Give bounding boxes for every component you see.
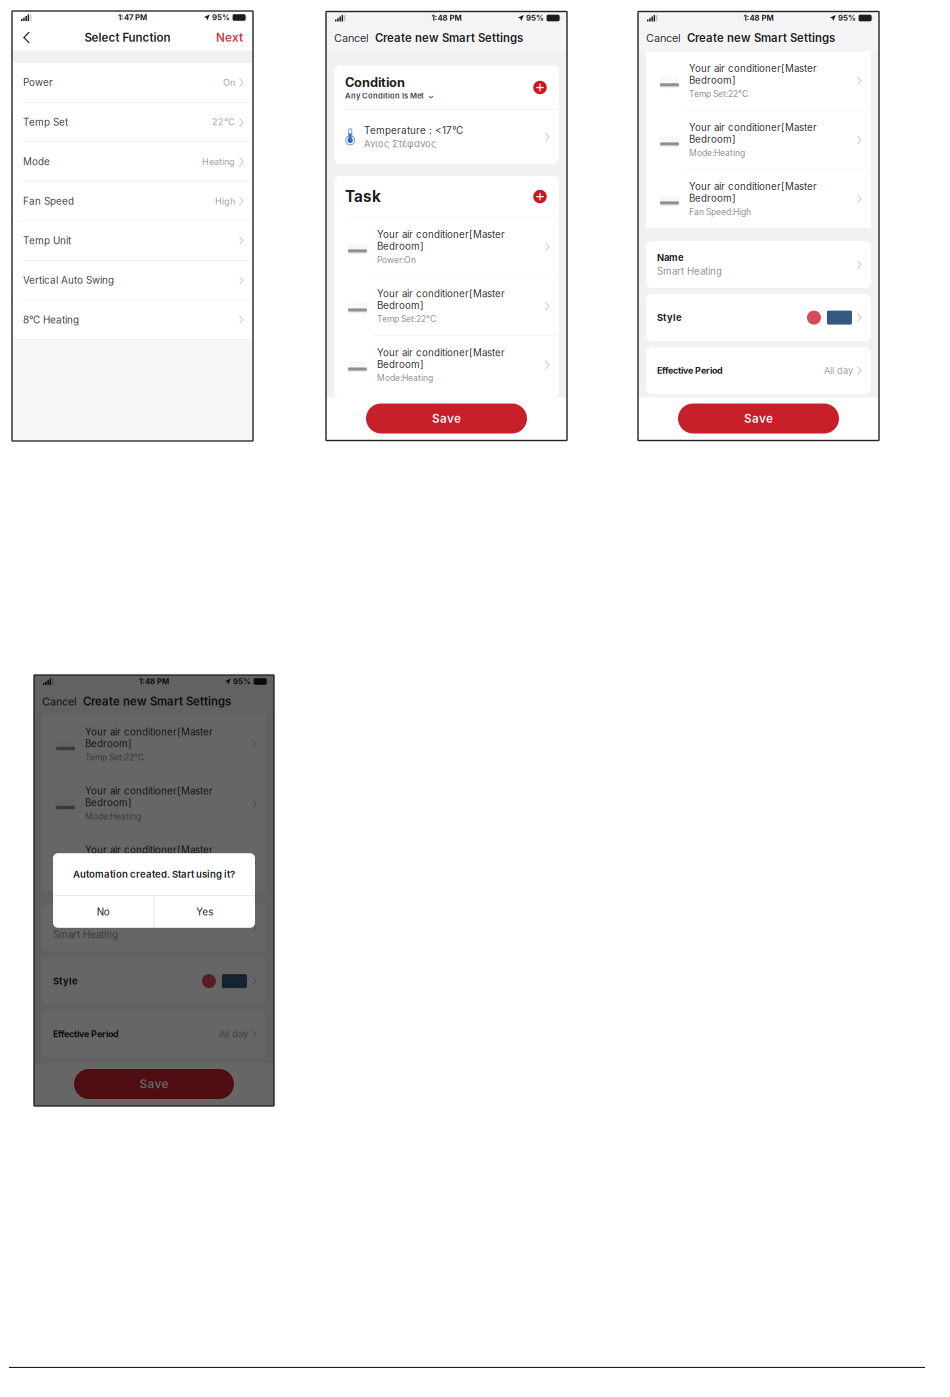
- button[interactable]: Add: [530, 77, 550, 97]
- staticText: Save: [139, 1077, 168, 1091]
- button[interactable]: Your air conditioner[Master: [334, 277, 559, 335]
- staticText: Vertical Auto Swing: [23, 274, 114, 286]
- staticText: Your air conditioner[Master: [85, 844, 213, 856]
- button[interactable]: Your air conditioner[Master: [334, 336, 559, 394]
- staticText: Your air conditioner[Master: [377, 347, 505, 359]
- staticText: Your air conditioner[Master: [377, 229, 505, 240]
- button[interactable]: Temperature : <17°C: [334, 110, 559, 164]
- staticText: 95%: [524, 13, 544, 23]
- button[interactable]: Your air conditioner[Master: [646, 51, 871, 110]
- button[interactable]: Vertical Auto Swing: [12, 261, 253, 300]
- button[interactable]: Your air conditioner[Master: [42, 774, 266, 832]
- staticText: Cancel: [42, 695, 77, 708]
- button[interactable]: Cancel: [34, 688, 83, 715]
- staticText: Bedroom]: [377, 240, 424, 252]
- button[interactable]: Effective Period: [42, 1011, 266, 1058]
- staticText: Create new Smart Settings: [687, 31, 835, 45]
- staticText: Next: [216, 30, 243, 45]
- staticText: 22°C: [212, 117, 235, 128]
- staticText: Create new Smart Settings: [83, 695, 231, 708]
- staticText: Cancel: [334, 31, 369, 45]
- button[interactable]: Your air conditioner[Master: [42, 833, 266, 892]
- staticText: 1:47 PM: [118, 13, 147, 22]
- staticText: Bedroom]: [689, 74, 736, 86]
- button[interactable]: Next: [216, 24, 253, 51]
- staticText: Name: [53, 916, 80, 927]
- staticText: Bedroom]: [377, 358, 424, 370]
- button[interactable]: Your air conditioner[Master: [646, 110, 871, 169]
- button[interactable]: Save: [366, 403, 527, 433]
- staticText: Bedroom]: [689, 133, 736, 145]
- staticText: Your air conditioner[Master: [377, 288, 505, 299]
- staticText: No: [97, 906, 110, 918]
- staticText: Mode:Heating: [689, 148, 745, 158]
- staticText: Effective Period: [657, 365, 723, 376]
- staticText: Automation created. Start using it?: [73, 868, 235, 880]
- staticText: 1:48 PM: [139, 677, 169, 686]
- staticText: Fan Speed:High: [85, 870, 147, 880]
- staticText: Bedroom]: [377, 299, 424, 311]
- staticText: All day: [824, 365, 853, 376]
- button[interactable]: 8°C Heating: [12, 300, 253, 339]
- staticText: High: [215, 196, 235, 207]
- staticText: Yes: [196, 906, 213, 918]
- staticText: Temp Unit: [23, 235, 71, 247]
- staticText: Name: [657, 252, 684, 263]
- staticText: Mode:Heating: [377, 373, 433, 383]
- staticText: Save: [432, 411, 461, 426]
- staticText: Smart Heating: [657, 265, 722, 277]
- button[interactable]: Style: [42, 958, 266, 1005]
- staticText: Any Condition Is Met ⌄: [345, 91, 434, 100]
- staticText: Your air conditioner[Master: [85, 785, 213, 797]
- staticText: Style: [657, 312, 682, 323]
- staticText: Effective Period: [53, 1029, 119, 1039]
- staticText: Temp Set:22°C: [689, 89, 748, 99]
- staticText: 8°C Heating: [23, 314, 79, 326]
- staticText: Power: [23, 76, 53, 88]
- staticText: 95%: [231, 677, 251, 686]
- button[interactable]: Temp Set: [12, 102, 253, 141]
- button[interactable]: Your air conditioner[Master: [42, 715, 266, 773]
- staticText: Your air conditioner[Master: [85, 726, 213, 738]
- staticText: On: [223, 77, 235, 88]
- staticText: Temp Set:22°C: [85, 752, 144, 762]
- button[interactable]: Name: [646, 241, 871, 288]
- staticText: Bedroom]: [85, 738, 132, 750]
- staticText: Your air conditioner[Master: [689, 122, 817, 133]
- staticText: 95%: [836, 13, 856, 23]
- button[interactable]: Power: [12, 63, 253, 102]
- button[interactable]: Style: [646, 294, 871, 341]
- button[interactable]: Yes: [154, 896, 255, 928]
- button[interactable]: No: [53, 896, 154, 928]
- staticText: Select Function: [84, 31, 170, 44]
- staticText: All day: [219, 1028, 248, 1040]
- staticText: Mode: [23, 156, 50, 167]
- button[interactable]: Save: [74, 1069, 234, 1099]
- staticText: Condition: [345, 75, 405, 90]
- button[interactable]: Fan Speed: [12, 182, 253, 221]
- staticText: 1:48 PM: [431, 13, 461, 23]
- staticText: Cancel: [646, 31, 681, 45]
- button[interactable]: Add: [530, 187, 550, 207]
- staticText: 1:48 PM: [743, 13, 773, 23]
- button[interactable]: Your air conditioner[Master: [334, 218, 559, 276]
- button[interactable]: Cancel: [638, 24, 687, 51]
- button[interactable]: Save: [678, 403, 839, 433]
- staticText: Fan Speed: [23, 195, 74, 207]
- staticText: Bedroom]: [689, 192, 736, 204]
- button[interactable]: Cancel: [326, 24, 375, 51]
- staticText: Mode:Heating: [85, 811, 141, 821]
- staticText: Bedroom]: [85, 797, 132, 809]
- button[interactable]: Name: [42, 905, 266, 952]
- button[interactable]: Effective Period: [646, 347, 871, 394]
- staticText: Style: [53, 975, 78, 987]
- staticText: Your air conditioner[Master: [689, 63, 817, 74]
- staticText: Heating: [202, 156, 235, 167]
- button[interactable]: Back: [12, 24, 39, 51]
- staticText: Temp Set:22°C: [377, 314, 436, 324]
- staticText: Task: [345, 187, 381, 206]
- button[interactable]: Mode: [12, 142, 253, 181]
- button[interactable]: Temp Unit: [12, 221, 253, 260]
- button[interactable]: Your air conditioner[Master: [646, 170, 871, 228]
